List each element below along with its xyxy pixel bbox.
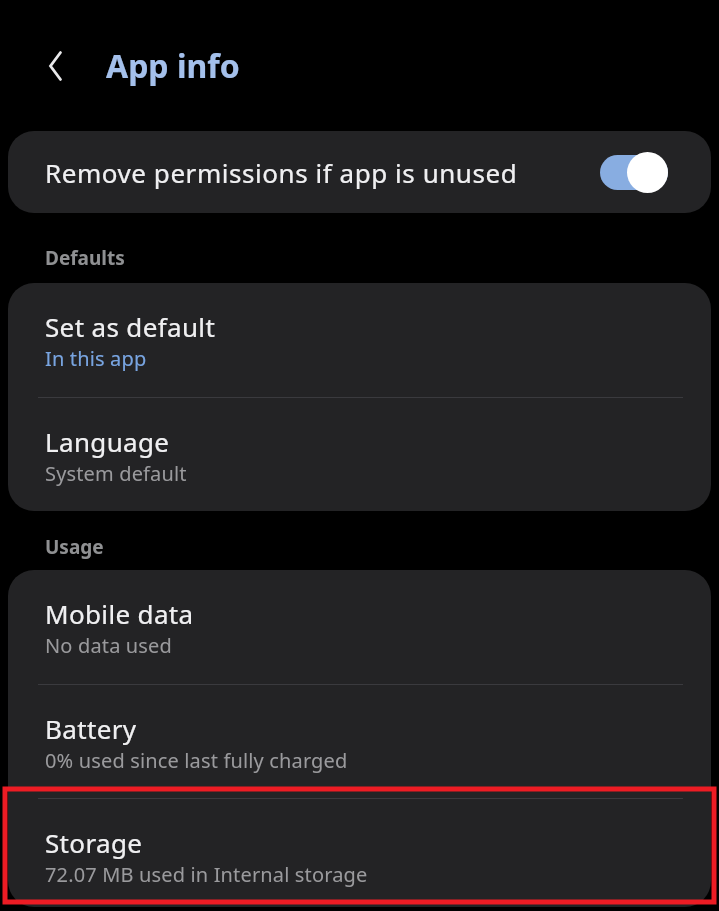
staticText: Language — [45, 424, 170, 459]
staticText: 0% used since last fully charged — [45, 747, 348, 774]
button[interactable]: Mobile data — [8, 570, 711, 684]
staticText: 72.07 MB used in Internal storage — [45, 861, 368, 888]
button[interactable]: Storage — [8, 799, 711, 907]
button[interactable]: Set as default — [8, 283, 711, 397]
staticText: Battery — [45, 711, 137, 746]
staticText: No data used — [45, 632, 172, 659]
staticText: Usage — [45, 534, 104, 560]
button[interactable]: Language — [8, 398, 711, 511]
staticText: In this app — [45, 345, 147, 372]
button[interactable] — [35, 46, 75, 86]
staticText: Mobile data — [45, 596, 194, 631]
button[interactable]: Battery — [8, 685, 711, 798]
button[interactable] — [600, 152, 668, 193]
staticText: App info — [106, 44, 240, 88]
staticText: Remove permissions if app is unused — [45, 155, 600, 190]
staticText: Set as default — [45, 309, 216, 344]
staticText: Storage — [45, 825, 143, 860]
staticText: System default — [45, 460, 187, 487]
staticText: Defaults — [45, 245, 125, 271]
button[interactable]: Remove permissions if app is unused — [8, 131, 711, 213]
